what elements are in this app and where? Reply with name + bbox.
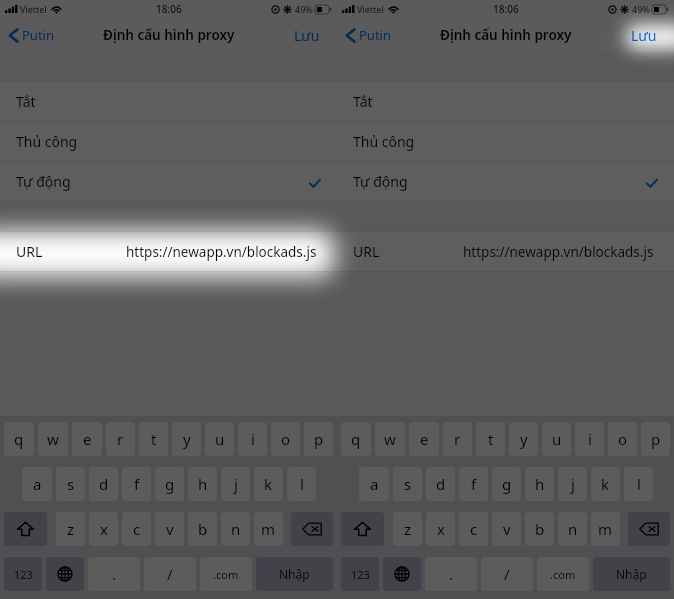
- button[interactable]: v: [155, 512, 184, 546]
- button[interactable]: e: [72, 422, 102, 456]
- staticText: m: [261, 519, 276, 539]
- button[interactable]: f: [459, 467, 488, 501]
- button[interactable]: m: [591, 512, 620, 546]
- button[interactable]: Delete: [291, 512, 333, 546]
- staticText: s: [404, 474, 412, 494]
- button[interactable]: Delete: [628, 512, 670, 546]
- button[interactable]: m: [254, 512, 283, 546]
- button[interactable]: x: [89, 512, 118, 546]
- button[interactable]: Lưu: [294, 18, 320, 52]
- button[interactable]: v: [492, 512, 521, 546]
- button[interactable]: Tắt: [337, 82, 674, 121]
- staticText: t: [151, 429, 157, 449]
- button[interactable]: Tự động: [337, 162, 674, 201]
- button[interactable]: s: [56, 467, 85, 501]
- button[interactable]: n: [221, 512, 250, 546]
- button[interactable]: i: [575, 422, 604, 456]
- button[interactable]: q: [4, 422, 34, 456]
- button[interactable]: o: [608, 422, 637, 456]
- staticText: Putin: [359, 26, 391, 44]
- button[interactable]: w: [375, 422, 405, 456]
- button[interactable]: g: [155, 467, 184, 501]
- button[interactable]: l: [287, 467, 316, 501]
- staticText: y: [520, 429, 528, 449]
- button[interactable]: w: [38, 422, 68, 456]
- button[interactable]: u: [542, 422, 571, 456]
- staticText: x: [437, 519, 445, 539]
- button[interactable]: h: [188, 467, 217, 501]
- button[interactable]: n: [558, 512, 587, 546]
- button[interactable]: x: [426, 512, 455, 546]
- button[interactable]: Putin: [345, 18, 391, 52]
- staticText: 49%: [295, 3, 313, 15]
- button[interactable]: Numbers: [341, 557, 379, 591]
- button[interactable]: z: [393, 512, 422, 546]
- staticText: 123: [351, 567, 370, 582]
- button[interactable]: Numbers: [4, 557, 42, 591]
- staticText: j: [234, 474, 238, 494]
- button[interactable]: u: [205, 422, 234, 456]
- button[interactable]: q: [341, 422, 371, 456]
- button[interactable]: k: [254, 467, 283, 501]
- button[interactable]: .com: [537, 557, 589, 591]
- staticText: g: [502, 474, 512, 494]
- button[interactable]: t: [139, 422, 168, 456]
- button[interactable]: y: [509, 422, 538, 456]
- button[interactable]: URL: [337, 232, 674, 271]
- staticText: b: [535, 519, 545, 539]
- button[interactable]: o: [271, 422, 300, 456]
- staticText: a: [370, 474, 379, 494]
- button[interactable]: Shift: [4, 512, 47, 546]
- button[interactable]: e: [409, 422, 439, 456]
- button[interactable]: a: [22, 467, 52, 501]
- button[interactable]: s: [393, 467, 422, 501]
- button[interactable]: b: [525, 512, 554, 546]
- button[interactable]: Putin: [8, 18, 54, 52]
- button[interactable]: r: [106, 422, 135, 456]
- button[interactable]: .com: [200, 557, 252, 591]
- button[interactable]: Tắt: [0, 82, 337, 121]
- button[interactable]: Nhập: [593, 557, 670, 591]
- button[interactable]: i: [238, 422, 267, 456]
- button[interactable]: Nhập: [256, 557, 333, 591]
- button[interactable]: p: [641, 422, 670, 456]
- button[interactable]: z: [56, 512, 85, 546]
- button[interactable]: p: [304, 422, 333, 456]
- button[interactable]: k: [591, 467, 620, 501]
- staticText: Nhập: [279, 566, 310, 582]
- button[interactable]: /: [481, 557, 533, 591]
- button[interactable]: c: [122, 512, 151, 546]
- staticText: d: [436, 474, 446, 494]
- staticText: h: [198, 474, 208, 494]
- button[interactable]: y: [172, 422, 201, 456]
- button[interactable]: Switch keyboard: [383, 557, 421, 591]
- button[interactable]: l: [624, 467, 653, 501]
- button[interactable]: j: [221, 467, 250, 501]
- staticText: URL: [16, 242, 43, 261]
- button[interactable]: Tự động: [0, 162, 337, 201]
- button[interactable]: h: [525, 467, 554, 501]
- button[interactable]: d: [426, 467, 455, 501]
- button[interactable]: Thủ công: [0, 122, 337, 161]
- staticText: e: [420, 429, 429, 449]
- staticText: r: [117, 429, 124, 449]
- button[interactable]: r: [443, 422, 472, 456]
- button[interactable]: g: [492, 467, 521, 501]
- button[interactable]: Shift: [341, 512, 384, 546]
- button[interactable]: Switch keyboard: [46, 557, 84, 591]
- staticText: k: [264, 474, 273, 494]
- button[interactable]: j: [558, 467, 587, 501]
- button[interactable]: a: [359, 467, 389, 501]
- button[interactable]: d: [89, 467, 118, 501]
- button[interactable]: b: [188, 512, 217, 546]
- button[interactable]: /: [144, 557, 196, 591]
- staticText: Viettel: [357, 3, 384, 15]
- button[interactable]: c: [459, 512, 488, 546]
- button[interactable]: Lưu: [631, 18, 657, 52]
- button[interactable]: Thủ công: [337, 122, 674, 161]
- button[interactable]: t: [476, 422, 505, 456]
- button[interactable]: URL: [0, 232, 337, 271]
- button[interactable]: f: [122, 467, 151, 501]
